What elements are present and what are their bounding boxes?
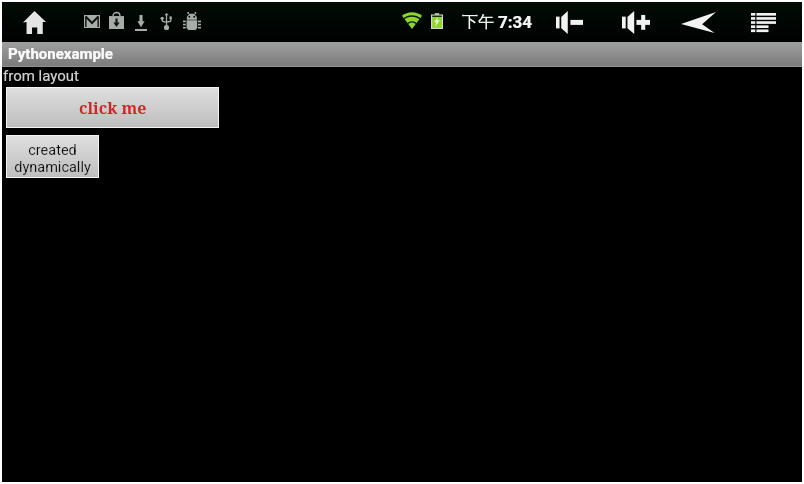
button[interactable]: Volume down xyxy=(546,4,593,40)
staticText: 下午 xyxy=(462,12,498,32)
staticText: created dynamically xyxy=(7,142,98,176)
staticText: from layout xyxy=(3,67,79,85)
staticText: click me xyxy=(79,97,147,119)
button[interactable]: Back xyxy=(673,4,723,40)
button[interactable]: Home xyxy=(14,5,54,39)
staticText: Pythonexample xyxy=(8,45,113,63)
button[interactable]: Volume up xyxy=(612,4,660,40)
button[interactable]: Recent apps xyxy=(740,4,786,40)
staticText: 7:34 xyxy=(498,12,533,32)
button[interactable]: click me xyxy=(7,88,218,127)
button[interactable]: created dynamically xyxy=(7,136,98,177)
